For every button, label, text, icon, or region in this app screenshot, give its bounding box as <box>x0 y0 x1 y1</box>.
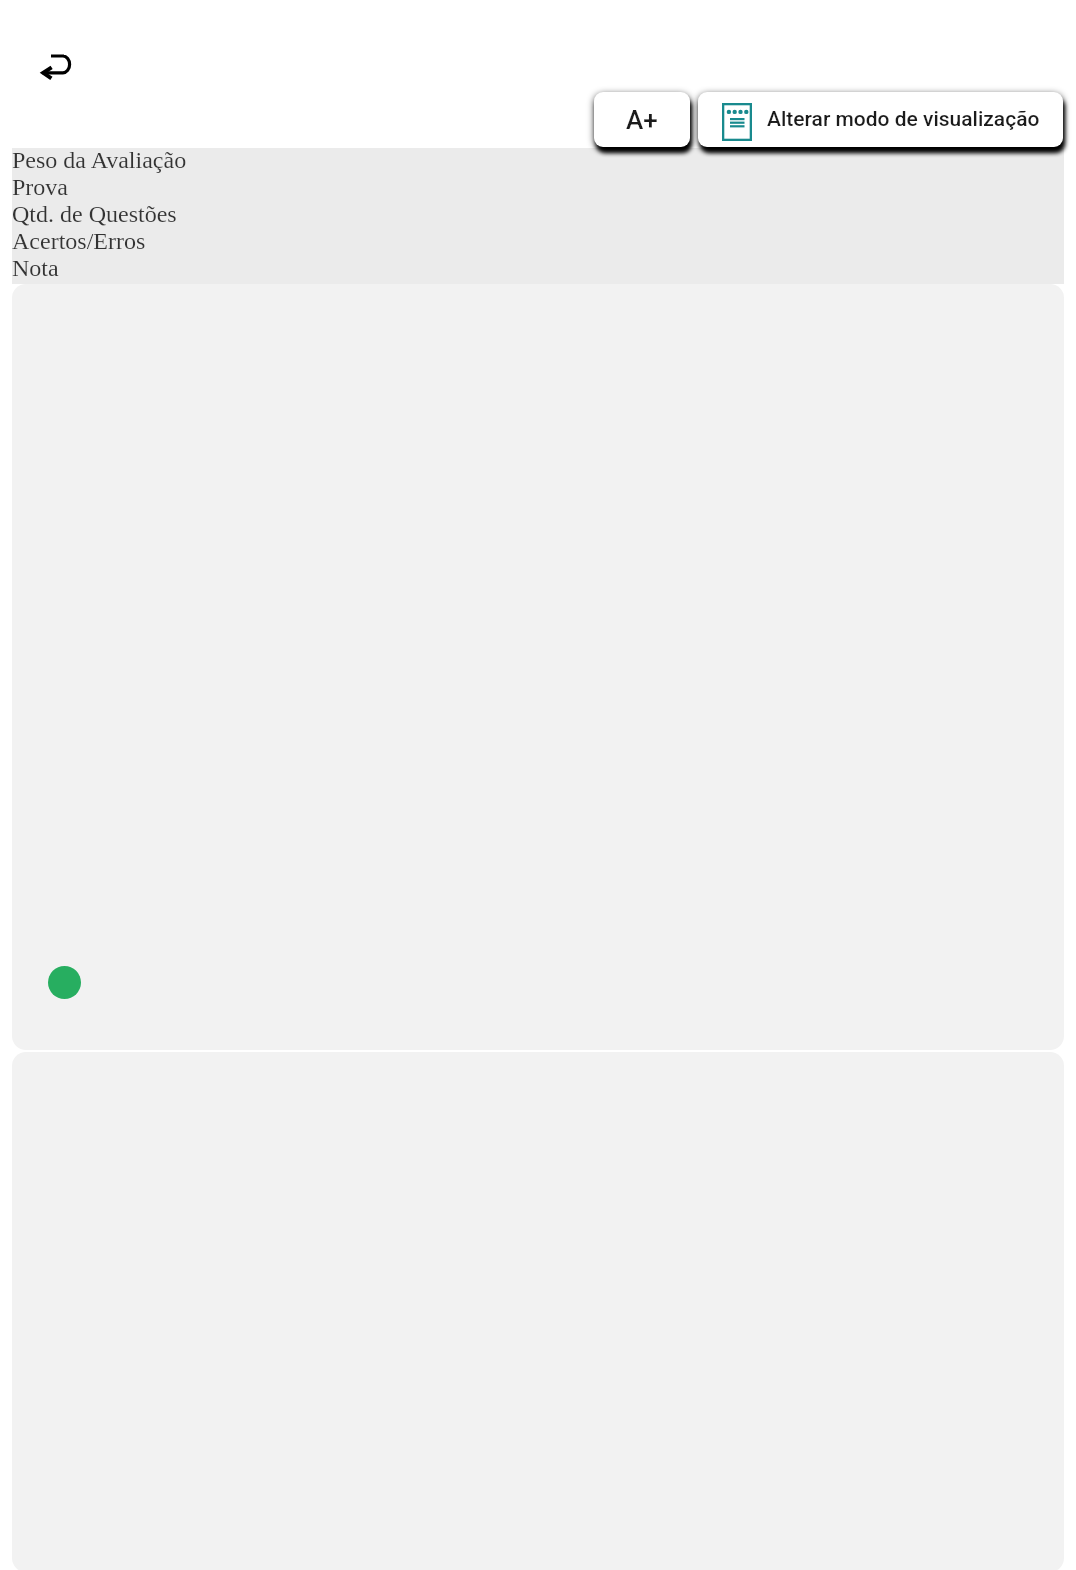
staticText: Nota <box>12 255 59 282</box>
staticText: A+ <box>626 105 658 135</box>
button[interactable]: Voltar <box>30 44 78 92</box>
staticText: Peso da Avaliação <box>12 147 187 174</box>
button[interactable]: A+ <box>594 92 690 147</box>
staticText: Qtd. de Questões <box>12 201 177 228</box>
staticText: Prova <box>12 174 68 201</box>
staticText: Alterar modo de visualização <box>767 107 1040 132</box>
staticText: Acertos/Erros <box>12 228 146 255</box>
button[interactable]: Alterar modo de visualização <box>698 92 1063 147</box>
